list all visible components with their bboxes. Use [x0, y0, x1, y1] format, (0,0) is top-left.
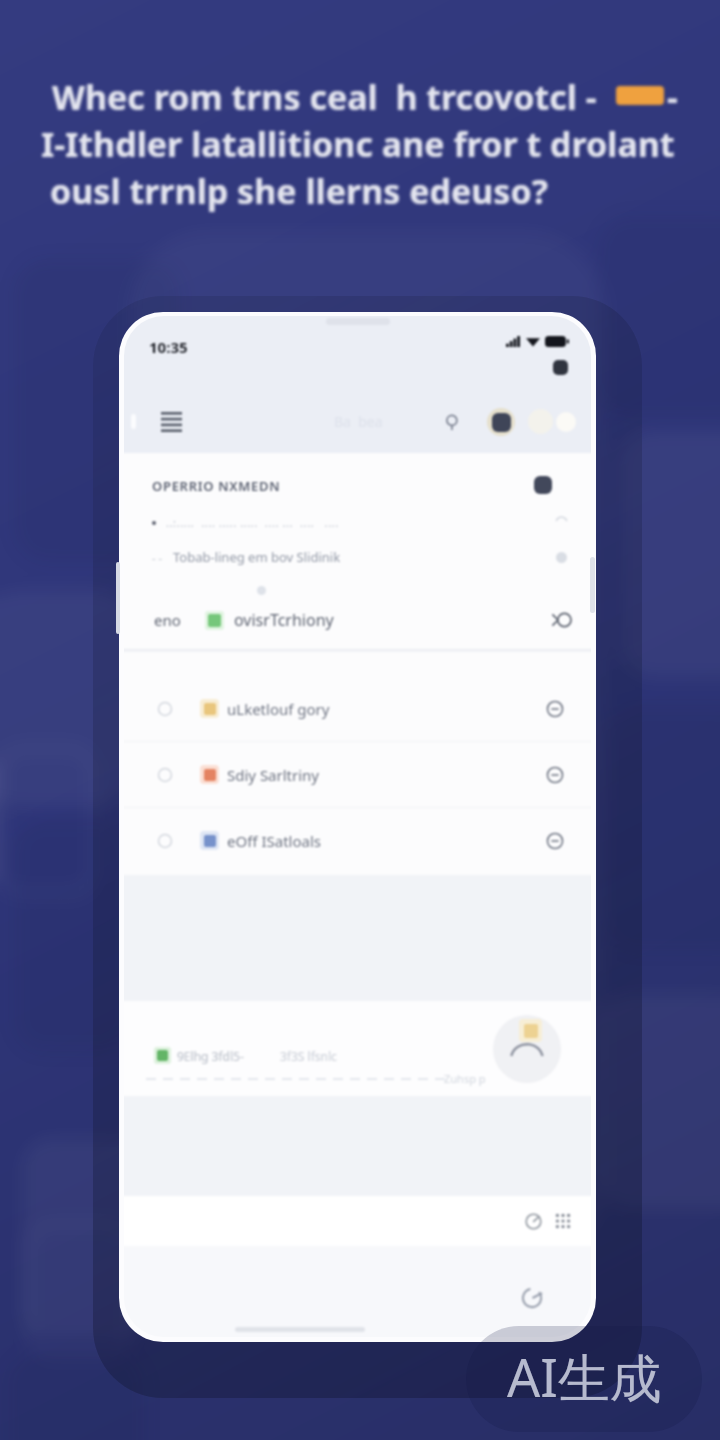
staticText: I-Ithdler latallitionc ane fror t drolan…	[41, 121, 675, 167]
staticText: eno	[154, 610, 181, 630]
button[interactable]: Apps	[551, 1209, 575, 1233]
staticText: Whec rom trns ceal h trcovotcl -	[52, 74, 597, 120]
staticText: OPERRIO NXMEDN	[152, 477, 281, 495]
staticText: ovisrTcrhiony	[234, 609, 334, 631]
button[interactable]: uLketlouf gory	[124, 676, 591, 741]
staticText: ..:..... .... ..... ..... .... ... .... …	[166, 515, 339, 530]
button[interactable]: Sdiy Sarltriny	[124, 742, 591, 807]
staticText: ousl trrnlp she llerns edeuso?	[50, 168, 548, 214]
button[interactable]: Avatar	[493, 1015, 561, 1083]
staticText: - -	[152, 550, 162, 565]
button[interactable]: Recent	[521, 1209, 545, 1233]
button[interactable]: eOff ISatloals	[124, 808, 591, 873]
button[interactable]: Account	[528, 409, 553, 434]
button[interactable]: Assistant	[520, 1286, 544, 1310]
button[interactable]: Profile	[487, 408, 515, 436]
staticText: eOff ISatloals	[227, 831, 321, 851]
button[interactable]: Search	[437, 407, 467, 437]
staticText: Tobab-lineg em bov Slidinik	[173, 548, 341, 566]
button[interactable]: Menu	[152, 403, 190, 441]
staticText: -	[667, 74, 678, 120]
staticText: AI生成	[507, 1341, 662, 1412]
staticText: 9Elhg 3fdl5-	[177, 1048, 244, 1064]
staticText: uLketlouf gory	[227, 699, 330, 719]
button[interactable]: eno	[154, 601, 572, 639]
staticText: 3f3S lfsnlc	[280, 1048, 337, 1064]
staticText: Zuhsp p	[444, 1071, 486, 1086]
staticText: 10:35	[149, 337, 188, 357]
button[interactable]: More	[556, 412, 576, 432]
button[interactable]: Remove	[546, 832, 564, 850]
button[interactable]: Card options	[534, 476, 552, 494]
button[interactable]: Remove	[546, 700, 564, 718]
staticText: Sdiy Sarltriny	[227, 765, 319, 785]
button[interactable]: Remove	[546, 766, 564, 784]
